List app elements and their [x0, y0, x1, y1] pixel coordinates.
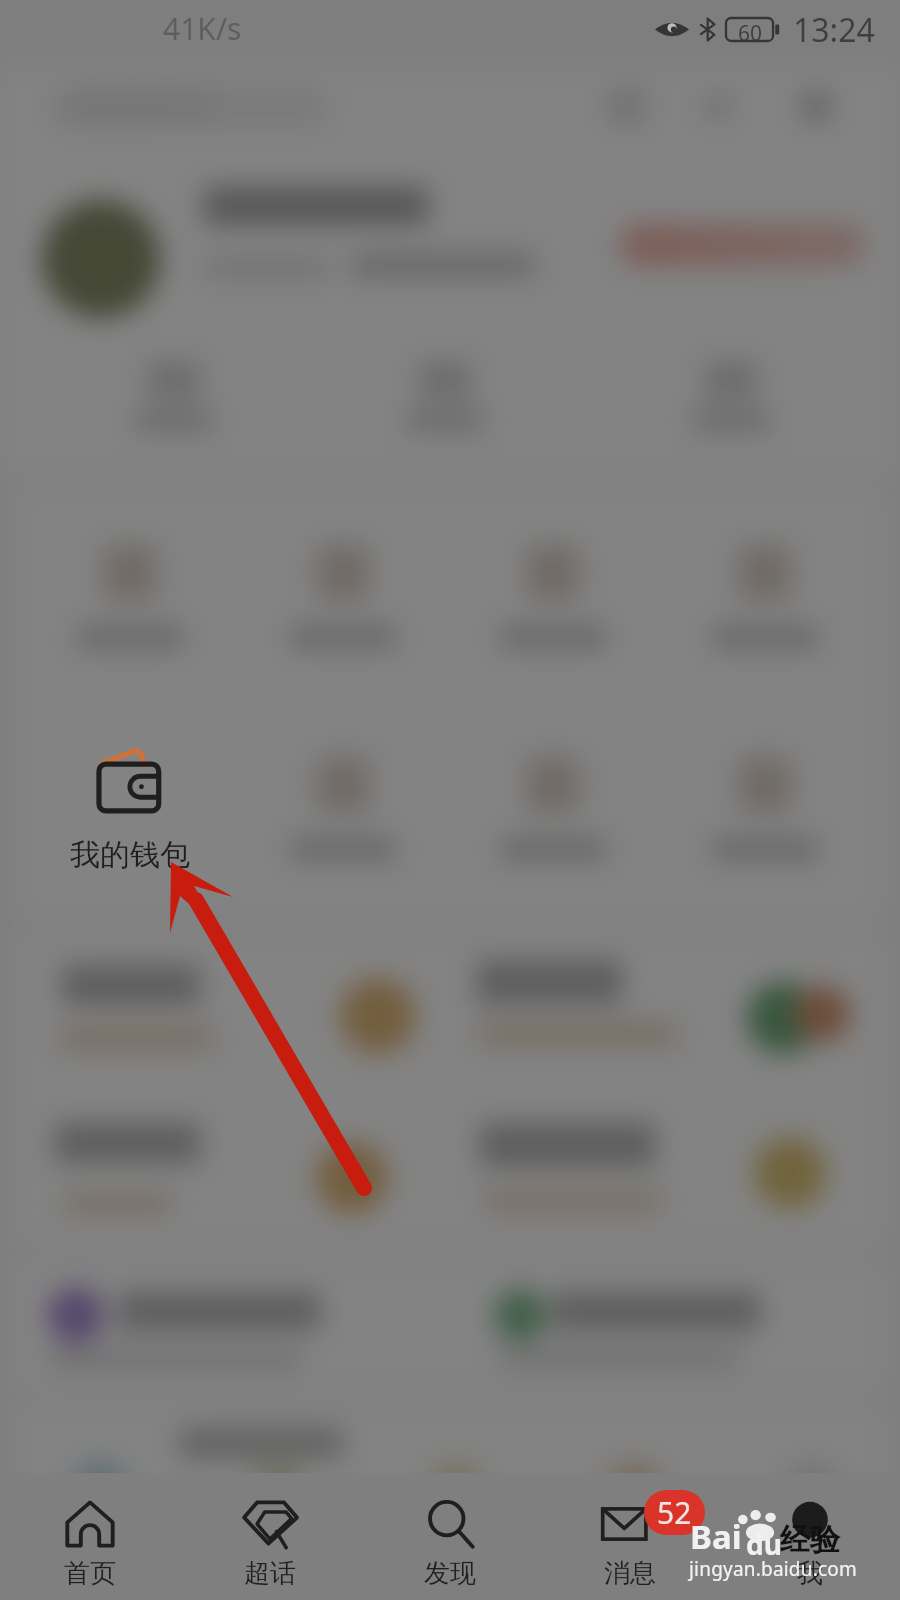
staticText: 我	[797, 1557, 823, 1590]
staticText: 发现	[424, 1557, 476, 1590]
staticText: du	[746, 1525, 782, 1563]
staticText: 消息	[604, 1557, 656, 1590]
button[interactable]: 首页	[0, 1473, 180, 1590]
staticText: jingyan.baidu.com	[689, 1556, 857, 1582]
staticText: 13:24	[793, 8, 875, 52]
button[interactable]: 我的钱包	[65, 738, 201, 878]
staticText: 经验	[780, 1521, 840, 1559]
staticText: 41K/s	[163, 8, 242, 49]
button[interactable]: 52	[540, 1473, 720, 1590]
staticText: 60	[738, 19, 763, 48]
staticText: 52	[657, 1492, 692, 1533]
button[interactable]: 发现	[360, 1473, 540, 1590]
staticText: 我的钱包	[70, 836, 190, 874]
button[interactable]: 超话	[180, 1473, 360, 1590]
staticText: Bai	[690, 1514, 742, 1559]
button[interactable]: 我	[720, 1473, 900, 1590]
staticText: 超话	[244, 1557, 296, 1590]
staticText: 首页	[64, 1557, 116, 1590]
